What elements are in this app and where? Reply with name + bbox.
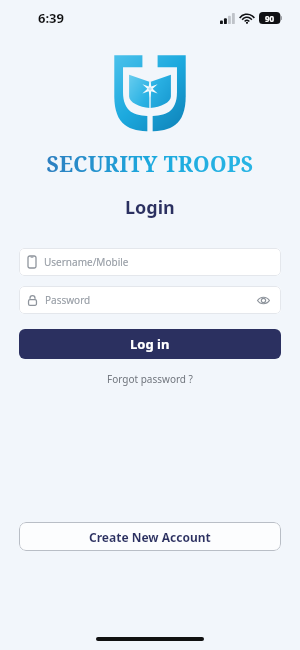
staticText: Log in — [130, 335, 170, 353]
button[interactable]: Password — [19, 286, 281, 314]
button[interactable]: Create New Account — [19, 522, 281, 551]
staticText: 90 — [265, 13, 275, 24]
staticText: 6:39 — [38, 9, 64, 27]
staticText: Forgot password ? — [107, 372, 193, 386]
button[interactable]: Show password — [255, 294, 272, 307]
staticText: SECURITY TROOPS — [46, 150, 254, 179]
staticText: Create New Account — [89, 529, 211, 545]
staticText: Login — [125, 195, 175, 220]
button[interactable]: Log in — [19, 329, 281, 359]
button[interactable]: Username/Mobile — [19, 248, 281, 276]
button[interactable]: Forgot password ? — [101, 370, 199, 388]
staticText: Username/Mobile — [44, 255, 272, 269]
staticText: Password — [45, 293, 255, 307]
